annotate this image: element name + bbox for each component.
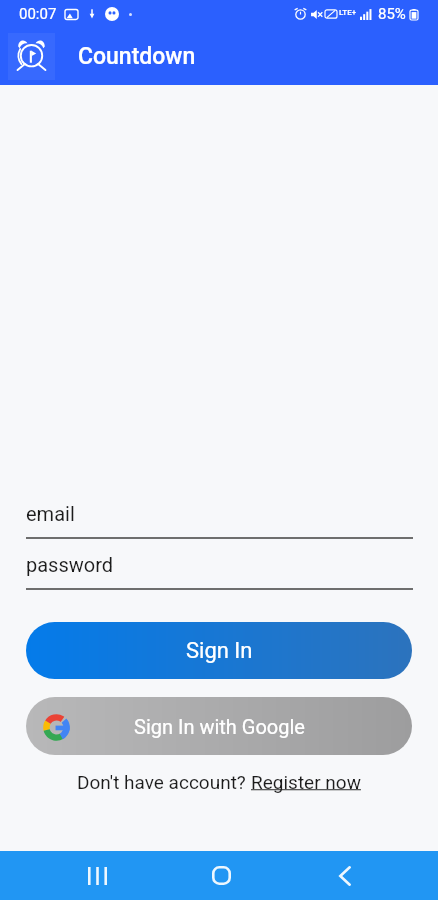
staticText: Sign In with Google xyxy=(134,715,305,738)
staticText: Sign In xyxy=(186,638,253,664)
staticText: email xyxy=(26,502,75,525)
staticText: 85% xyxy=(378,5,406,23)
staticText: 00:07 xyxy=(19,5,57,23)
button[interactable]: Recent apps xyxy=(36,851,159,900)
button[interactable]: Back xyxy=(283,851,407,900)
staticText: Register now xyxy=(251,771,361,793)
button[interactable]: Countdown logo xyxy=(8,33,55,80)
staticText: Countdown xyxy=(78,43,196,70)
staticText: password xyxy=(26,553,114,576)
button[interactable]: Home xyxy=(159,851,283,900)
button[interactable]: Register now xyxy=(251,771,361,793)
button[interactable]: Sign In with Google xyxy=(26,697,412,755)
button[interactable]: Sign In xyxy=(26,622,412,679)
staticText: Don't have account? xyxy=(77,771,251,793)
staticText: LTE+ xyxy=(339,8,357,17)
